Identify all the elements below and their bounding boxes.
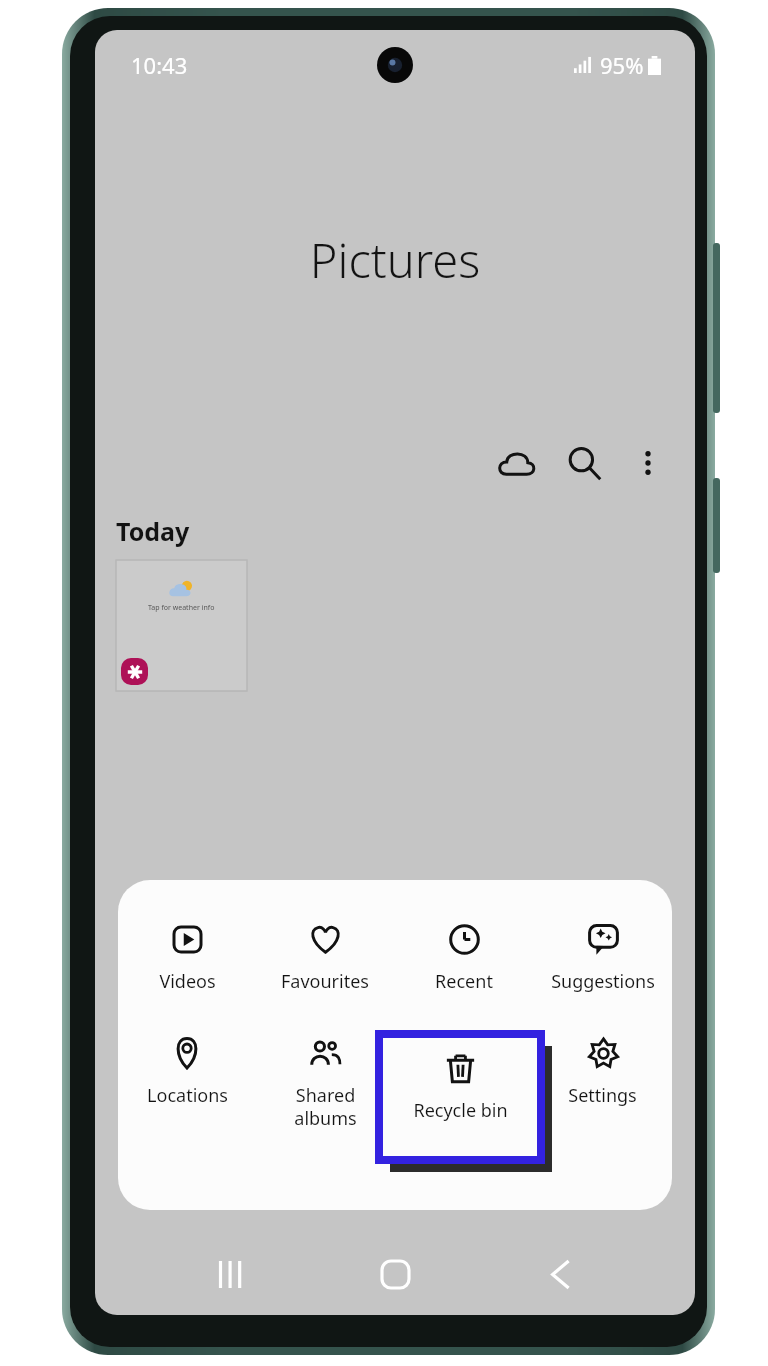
staticText: Locations — [147, 1083, 228, 1108]
staticText: Favourites — [281, 969, 369, 994]
staticText: Recent — [435, 969, 493, 994]
staticText: 95% — [600, 50, 644, 80]
staticText: Recycle bin — [413, 1098, 508, 1123]
staticText: Tap for weather info — [148, 603, 215, 613]
button[interactable]: Locations — [118, 1034, 256, 1110]
staticText: Videos — [159, 969, 216, 994]
other: Motion photo — [121, 658, 148, 685]
staticText: Settings — [568, 1083, 637, 1108]
button[interactable]: Recents — [199, 1243, 261, 1305]
button[interactable]: Search — [561, 440, 607, 486]
button[interactable]: Recent — [394, 920, 533, 996]
staticText: 10:43 — [131, 50, 188, 80]
button[interactable]: Recycle bin — [379, 1034, 541, 1160]
staticText: Pictures — [95, 228, 695, 292]
staticText: Shared albums — [294, 1083, 357, 1130]
button[interactable]: Tap for weather info — [116, 560, 247, 691]
button[interactable]: Videos — [118, 920, 256, 996]
button[interactable]: Settings — [533, 1034, 672, 1110]
button[interactable]: Shared albums — [256, 1034, 394, 1132]
button[interactable]: Back — [530, 1243, 592, 1305]
button[interactable]: Suggestions — [533, 920, 672, 996]
button[interactable]: More options — [625, 440, 671, 486]
button[interactable]: Favourites — [256, 920, 394, 996]
button[interactable]: Cloud — [493, 440, 539, 486]
button[interactable]: Home — [364, 1243, 426, 1305]
staticText: Suggestions — [551, 969, 655, 994]
staticText: Today — [116, 514, 190, 548]
